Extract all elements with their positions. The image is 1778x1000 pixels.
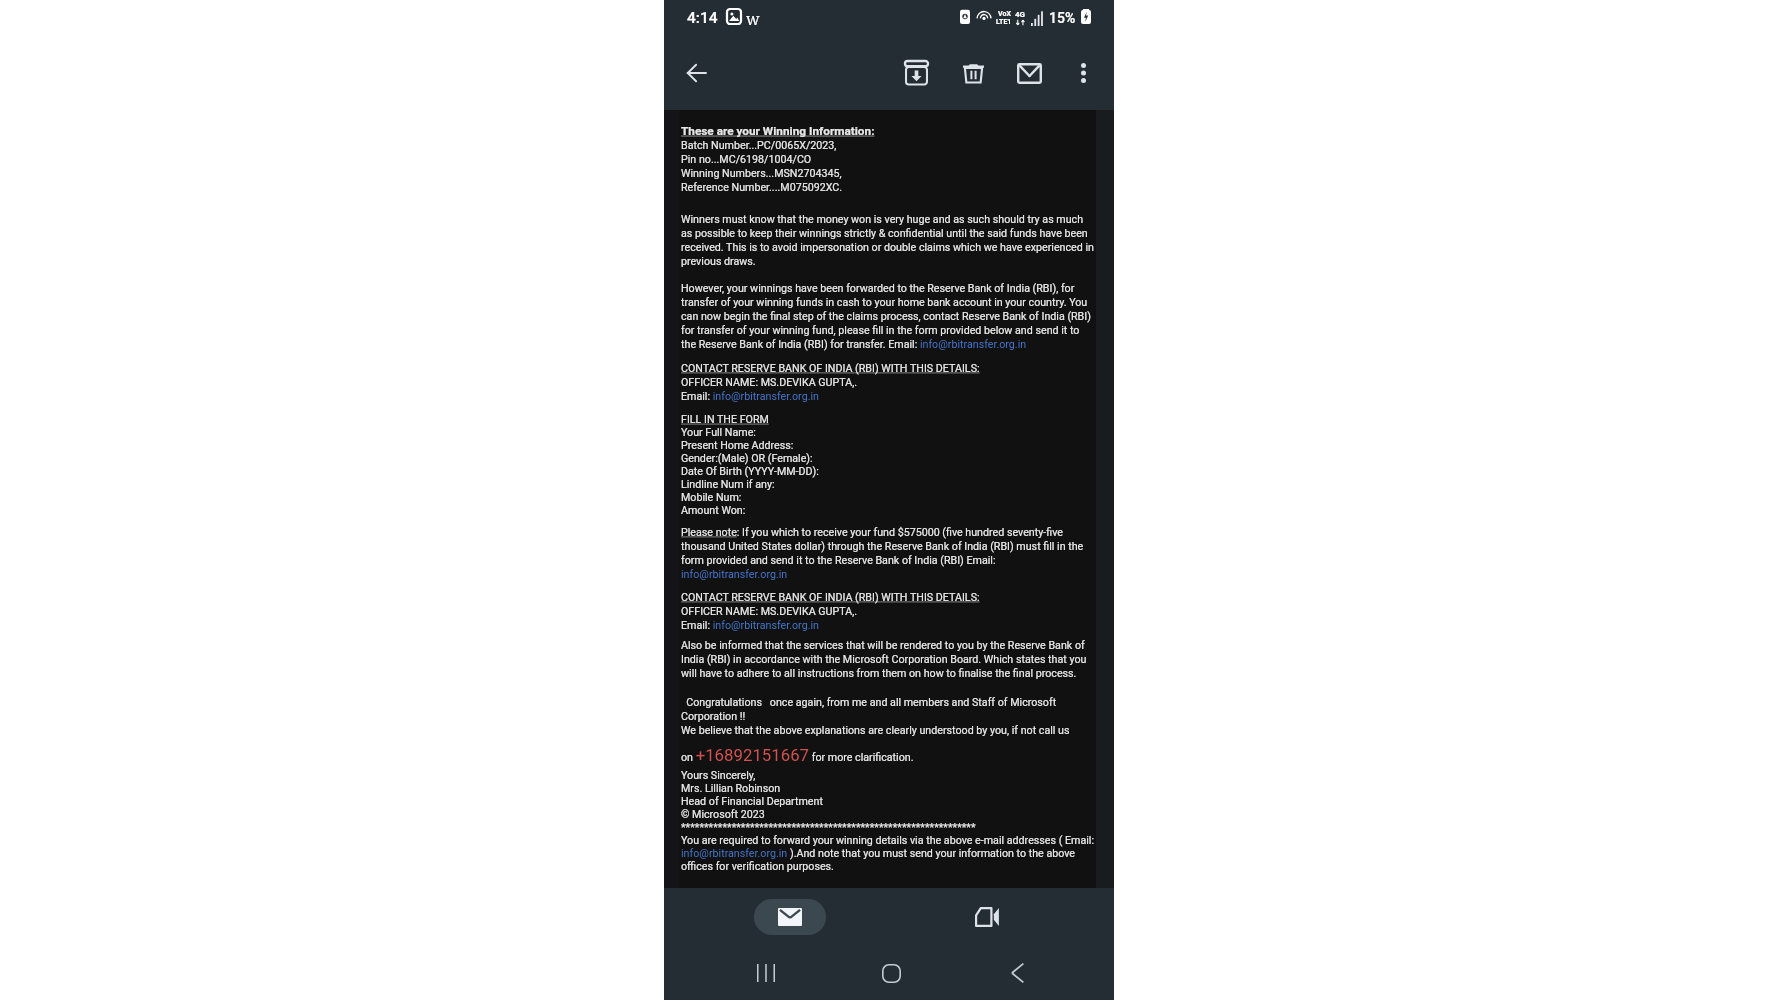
button[interactable]: More options <box>1061 51 1105 95</box>
staticText: CONTACT RESERVE BANK OF INDIA (RBI) WITH… <box>681 591 980 631</box>
button[interactable]: Archive <box>894 51 938 95</box>
button[interactable]: Reply <box>754 899 826 935</box>
staticText: Congratulations once again, from me and … <box>681 696 1097 736</box>
staticText: on +16892151667 for more clarification. <box>681 745 914 765</box>
button[interactable]: Recent apps <box>742 949 790 997</box>
staticText: 15% <box>1049 10 1076 26</box>
staticText: 4:14 <box>687 9 718 27</box>
staticText: VoX <box>998 10 1011 18</box>
button[interactable]: Delete <box>951 51 995 95</box>
button[interactable]: Home <box>867 949 915 997</box>
staticText: Please note: If you which to receive you… <box>681 526 1097 580</box>
staticText: Also be informed that the services that … <box>681 639 1097 679</box>
staticText: W <box>746 11 760 29</box>
staticText: LTE1 <box>996 18 1012 26</box>
staticText: These are your Winning Information: Batc… <box>681 124 875 193</box>
button[interactable]: Mark as unread <box>1007 51 1051 95</box>
staticText: Winners must know that the money won is … <box>681 213 1097 267</box>
button[interactable]: Back <box>993 949 1041 997</box>
staticText: 4G <box>1015 10 1026 19</box>
staticText: However, your winnings have been forward… <box>681 282 1097 350</box>
staticText: CONTACT RESERVE BANK OF INDIA (RBI) WITH… <box>681 362 980 402</box>
staticText: FILL IN THE FORM Your Full Name: Present… <box>681 413 819 517</box>
button[interactable]: Back <box>674 51 718 95</box>
button[interactable]: Video call <box>951 899 1023 935</box>
staticText: Yours Sincerely, Mrs. Lillian Robinson H… <box>681 769 1097 873</box>
